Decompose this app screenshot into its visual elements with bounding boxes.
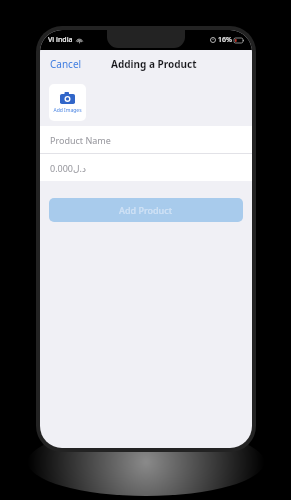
staticText: Vi india [48,35,73,45]
staticText: 0.000د.ل [50,162,86,174]
staticText: Product Name [50,134,111,146]
button[interactable]: Add Product [49,198,243,222]
button[interactable]: Cancel [40,52,92,76]
staticText: Add Images [53,107,82,114]
button[interactable]: 0.000د.ل [40,154,252,181]
staticText: Add Product [119,204,173,216]
staticText: 16% [218,35,232,45]
button[interactable]: Add Images [49,84,86,121]
staticText: Adding a Product [111,57,197,71]
staticText: Cancel [50,57,82,71]
button[interactable]: Product Name [40,126,252,153]
